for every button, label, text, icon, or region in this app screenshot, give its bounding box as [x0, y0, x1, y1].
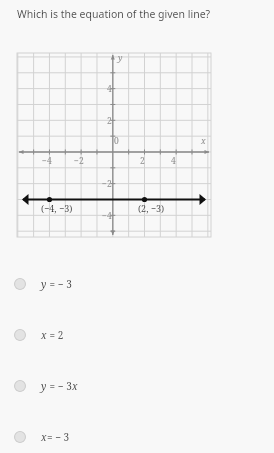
- staticText: = 2: [47, 328, 64, 342]
- staticText: x: [41, 430, 47, 444]
- staticText: 2: [107, 115, 112, 127]
- staticText: 0: [114, 135, 119, 147]
- staticText: −2: [74, 155, 84, 167]
- staticText: 2: [140, 155, 145, 167]
- staticText: 4: [107, 83, 112, 95]
- staticText: −2: [102, 178, 112, 190]
- staticText: −4: [102, 210, 112, 222]
- staticText: y: [118, 52, 123, 64]
- staticText: 4: [171, 155, 176, 167]
- button[interactable]: x: [14, 322, 260, 348]
- button[interactable]: y: [14, 271, 260, 297]
- staticText: −4: [42, 155, 52, 167]
- staticText: y: [41, 277, 47, 291]
- staticText: (2, −3): [138, 202, 165, 214]
- staticText: x: [72, 379, 78, 393]
- button[interactable]: x: [14, 424, 260, 450]
- staticText: (−4, −3): [41, 202, 73, 214]
- staticText: Which is the equation of the given line?: [17, 7, 211, 21]
- staticText: = − 3: [47, 277, 72, 291]
- other: Coordinate grid with horizontal line y =…: [17, 53, 211, 237]
- staticText: = − 3: [47, 379, 72, 393]
- button[interactable]: y: [14, 373, 260, 399]
- staticText: x: [41, 328, 47, 342]
- staticText: = − 3: [47, 430, 70, 444]
- staticText: x: [201, 135, 206, 147]
- staticText: y: [41, 379, 47, 393]
